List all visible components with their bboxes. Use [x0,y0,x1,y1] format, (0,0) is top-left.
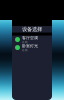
staticText: 在线 [22,48,28,52]
staticText: 设备选择 [22,26,42,33]
button[interactable]: 卧室灯光 [12,44,52,52]
button[interactable]: 客厅空调 [12,36,52,44]
staticText: 客厅空调 [22,35,38,40]
staticText: 在线 [22,40,28,44]
staticText: 卧室灯光 [22,43,38,48]
